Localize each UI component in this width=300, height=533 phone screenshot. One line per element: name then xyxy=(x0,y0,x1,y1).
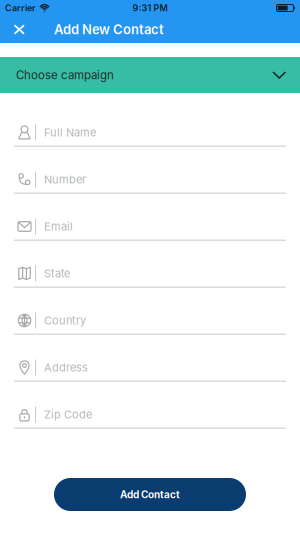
staticText: Email xyxy=(44,220,73,233)
button[interactable]: Full Name xyxy=(0,100,300,147)
button[interactable]: Zip Code xyxy=(0,382,300,429)
staticText: Add New Contact xyxy=(54,22,164,37)
button[interactable]: Close xyxy=(0,25,34,34)
button[interactable]: Country xyxy=(0,288,300,335)
staticText: Carrier xyxy=(5,3,36,13)
button[interactable]: Number xyxy=(0,147,300,194)
button[interactable]: Address xyxy=(0,335,300,382)
button[interactable]: Email xyxy=(0,194,300,241)
button[interactable]: State xyxy=(0,241,300,288)
staticText: State xyxy=(44,267,70,280)
staticText: Country xyxy=(44,314,86,327)
staticText: Add Contact xyxy=(120,488,180,501)
staticText: Choose campaign xyxy=(16,68,114,82)
staticText: Full Name xyxy=(44,126,96,139)
button[interactable]: Add Contact xyxy=(54,478,246,511)
staticText: Address xyxy=(44,361,88,374)
staticText: Number xyxy=(44,173,86,186)
staticText: Zip Code xyxy=(44,408,92,421)
button[interactable]: Choose campaign xyxy=(0,57,300,93)
staticText: 9:31 PM xyxy=(132,3,167,13)
